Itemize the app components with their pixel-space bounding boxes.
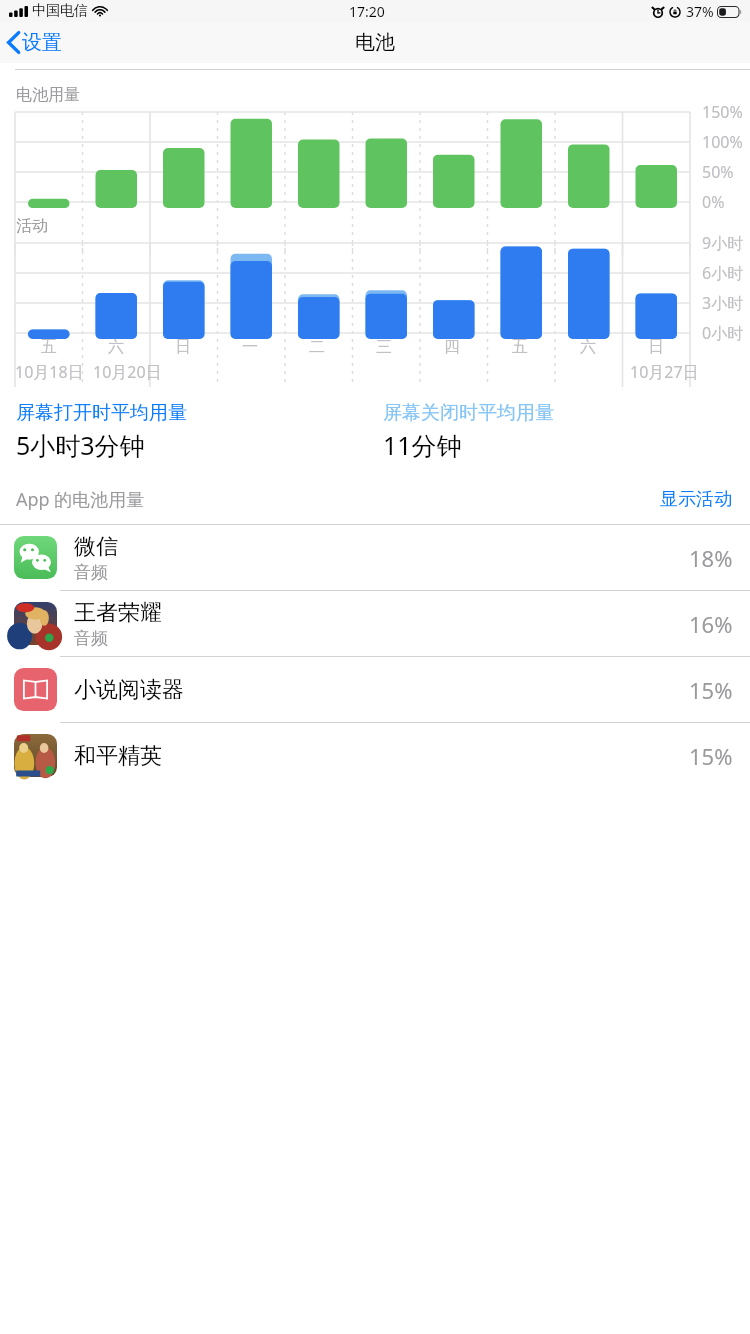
staticText: 50% <box>702 161 734 183</box>
staticText: 9小时 <box>702 232 744 254</box>
staticText: 10月20日 <box>93 361 162 383</box>
button[interactable]: 显示活动 <box>658 486 734 513</box>
staticText: 和平精英 <box>74 742 162 770</box>
button[interactable]: 设置 <box>0 25 74 60</box>
staticText: 屏幕打开时平均用量 <box>16 401 187 425</box>
staticText: 六 <box>108 337 124 357</box>
other: 和平精英 <box>14 734 57 777</box>
staticText: 17:20 <box>349 2 385 21</box>
staticText: 显示活动 <box>660 488 732 511</box>
staticText: 微信 <box>74 533 118 561</box>
staticText: 18% <box>689 543 733 573</box>
staticText: 10月18日 <box>15 361 84 383</box>
staticText: 一 <box>242 337 258 357</box>
other: 微信 <box>14 536 57 579</box>
staticText: 音频 <box>74 562 108 583</box>
staticText: 王者荣耀 <box>74 599 162 627</box>
staticText: 中国电信 <box>32 2 88 20</box>
staticText: 15% <box>689 675 733 705</box>
staticText: 100% <box>702 131 743 153</box>
staticText: 37% <box>686 2 714 21</box>
staticText: 0% <box>702 191 725 213</box>
staticText: 电池用量 <box>16 85 80 105</box>
staticText: 小说阅读器 <box>74 676 184 704</box>
other: 王者荣耀 <box>14 602 57 645</box>
staticText: 设置 <box>22 30 62 55</box>
staticText: 三 <box>376 337 392 357</box>
staticText: 电池 <box>355 30 395 55</box>
other: 小说阅读器 <box>14 668 57 711</box>
staticText: 6小时 <box>702 262 744 284</box>
staticText: 16% <box>689 609 733 639</box>
staticText: 日 <box>175 337 191 357</box>
staticText: 二 <box>309 337 325 357</box>
staticText: 五 <box>512 337 528 357</box>
staticText: 四 <box>444 337 460 357</box>
button[interactable]: 王者荣耀 <box>0 591 750 656</box>
staticText: 10月27日 <box>630 361 699 383</box>
staticText: 六 <box>580 337 596 357</box>
staticText: 11分钟 <box>383 428 462 462</box>
staticText: 屏幕关闭时平均用量 <box>383 401 554 425</box>
button[interactable]: 和平精英 <box>0 723 750 788</box>
staticText: 日 <box>648 337 664 357</box>
button[interactable]: 小说阅读器 <box>0 657 750 722</box>
staticText: 活动 <box>16 216 48 236</box>
staticText: 3小时 <box>702 292 744 314</box>
staticText: 五 <box>41 337 57 357</box>
button[interactable]: 微信 <box>0 525 750 590</box>
staticText: 0小时 <box>702 322 744 344</box>
staticText: 音频 <box>74 628 108 649</box>
staticText: 5小时3分钟 <box>16 428 145 462</box>
staticText: App 的电池用量 <box>16 487 145 512</box>
staticText: 15% <box>689 741 733 771</box>
staticText: 150% <box>702 101 743 123</box>
